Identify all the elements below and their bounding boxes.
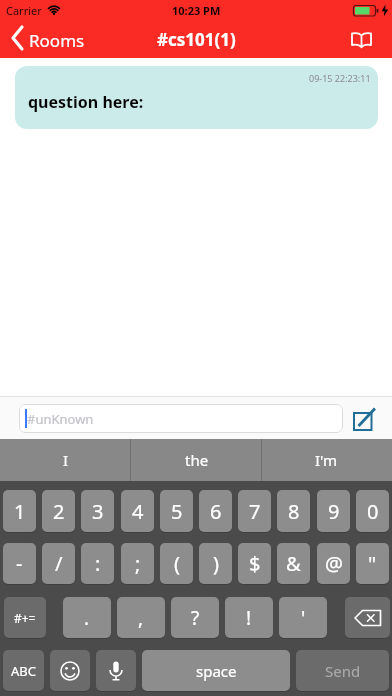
staticText: #cs101(1) [157, 28, 236, 51]
button[interactable]: 7 [238, 490, 271, 532]
staticText: ; [135, 550, 141, 577]
staticText: " [368, 550, 377, 577]
staticText: $ [249, 550, 261, 577]
staticText: ABC [11, 662, 36, 680]
staticText: : [95, 550, 101, 577]
staticText: 4 [132, 498, 144, 525]
staticText: & [286, 550, 301, 577]
staticText: #+= [14, 610, 36, 626]
staticText: I [63, 450, 69, 470]
button[interactable]: 3 [81, 490, 114, 532]
button[interactable]: . [63, 597, 111, 638]
staticText: 9 [328, 498, 340, 525]
button[interactable]: ! [225, 597, 273, 638]
button[interactable]: 8 [277, 490, 310, 532]
staticText: / [55, 550, 63, 577]
button[interactable] [96, 650, 136, 691]
staticText: ! [246, 605, 252, 631]
button[interactable]: 0 [356, 490, 389, 532]
button[interactable]: I [0, 439, 131, 481]
staticText: Send [325, 661, 361, 681]
button[interactable]: space [142, 650, 290, 691]
button[interactable]: 2 [42, 490, 75, 532]
button[interactable]: ( [160, 543, 193, 584]
button[interactable]: ABC [3, 650, 44, 691]
staticText: space [196, 661, 237, 681]
button[interactable]: / [42, 543, 75, 584]
staticText: 0 [367, 498, 379, 525]
button[interactable]: 1 [3, 490, 36, 532]
staticText: - [16, 550, 23, 577]
button[interactable]: #+= [4, 597, 46, 638]
button[interactable] [50, 650, 90, 691]
button[interactable]: - [3, 543, 36, 584]
staticText: ? [191, 605, 200, 631]
staticText: 09-15 22:23:11 [309, 72, 371, 84]
staticText: ' [301, 605, 306, 631]
button[interactable]: ' [279, 597, 327, 638]
staticText: ) [213, 550, 219, 577]
button[interactable] [342, 22, 380, 56]
button[interactable]: 9 [317, 490, 350, 532]
button[interactable]: @ [317, 543, 350, 584]
staticText: the [185, 450, 209, 470]
staticText: I'm [315, 450, 338, 470]
button[interactable]: the [131, 439, 262, 481]
staticText: 3 [92, 498, 104, 525]
staticText: . [84, 605, 90, 631]
staticText: , [138, 605, 144, 631]
button[interactable]: & [277, 543, 310, 584]
button[interactable]: $ [238, 543, 271, 584]
staticText: #unKnown [27, 410, 94, 428]
button[interactable]: ? [171, 597, 219, 638]
staticText: ( [174, 550, 180, 577]
button[interactable]: I'm [261, 439, 392, 481]
button[interactable] [345, 597, 390, 638]
button[interactable] [348, 404, 380, 434]
staticText: Carrier [6, 3, 42, 18]
button[interactable]: ; [121, 543, 154, 584]
button[interactable]: : [81, 543, 114, 584]
staticText: 6 [210, 498, 222, 525]
button[interactable]: 6 [199, 490, 232, 532]
staticText: 5 [171, 498, 183, 525]
button[interactable]: #unKnown [19, 404, 343, 433]
staticText: 2 [53, 498, 65, 525]
staticText: @ [325, 550, 343, 577]
staticText: 10:23 PM [172, 3, 221, 18]
button[interactable]: 4 [121, 490, 154, 532]
staticText: 1 [14, 498, 26, 525]
staticText: 7 [249, 498, 261, 525]
staticText: Rooms [29, 29, 85, 52]
staticText: 8 [288, 498, 300, 525]
staticText: question here: [28, 91, 144, 113]
button[interactable]: Rooms [4, 22, 94, 56]
button[interactable]: " [356, 543, 389, 584]
button[interactable]: ) [199, 543, 232, 584]
button[interactable]: , [117, 597, 165, 638]
button[interactable]: 5 [160, 490, 193, 532]
button[interactable]: Send [296, 650, 389, 691]
